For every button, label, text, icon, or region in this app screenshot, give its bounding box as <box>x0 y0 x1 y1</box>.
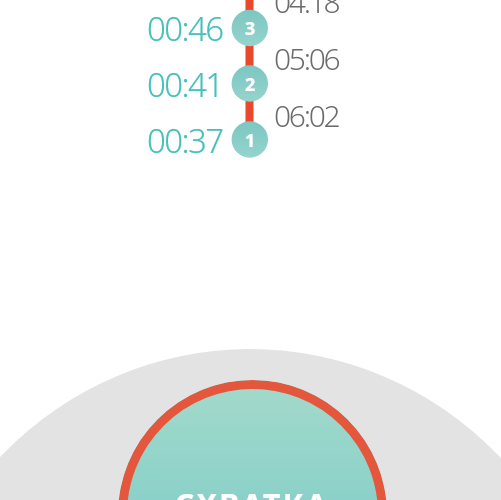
staticText: 00:41 <box>147 62 223 106</box>
staticText: СХВАТКА <box>175 484 330 500</box>
staticText: 05:06 <box>274 38 339 79</box>
staticText: 04:18 <box>274 0 339 22</box>
staticText: 06:02 <box>274 95 339 136</box>
button[interactable]: СХВАТКА <box>118 380 387 500</box>
staticText: 00:46 <box>147 6 223 50</box>
staticText: 1 <box>245 128 256 153</box>
staticText: 3 <box>245 16 256 41</box>
staticText: 00:37 <box>147 118 223 162</box>
staticText: 2 <box>245 72 256 97</box>
